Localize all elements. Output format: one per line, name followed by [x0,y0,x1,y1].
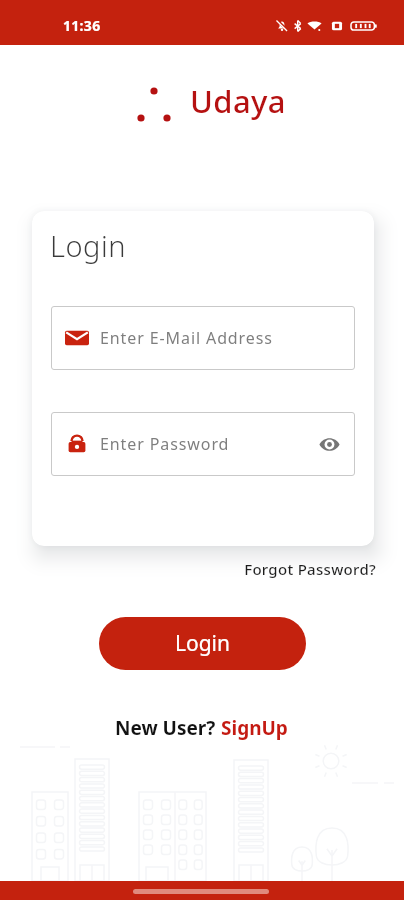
staticText: Enter Password [100,433,315,455]
button[interactable]: Show password [315,430,343,458]
button[interactable]: Login [99,617,306,670]
staticText: 11:36 [63,16,101,35]
staticText: Enter E-Mail Address [100,327,343,349]
button[interactable]: Forgot Password? [0,559,376,579]
button[interactable]: Enter E-Mail Address [51,306,355,370]
staticText: Login [175,629,231,658]
staticText: Udaya [190,80,286,122]
staticText: Login [50,226,126,265]
staticText: New User? [115,715,221,741]
button[interactable]: Enter Password [51,412,355,476]
button[interactable]: New User? [115,715,288,741]
staticText: SignUp [221,715,288,741]
